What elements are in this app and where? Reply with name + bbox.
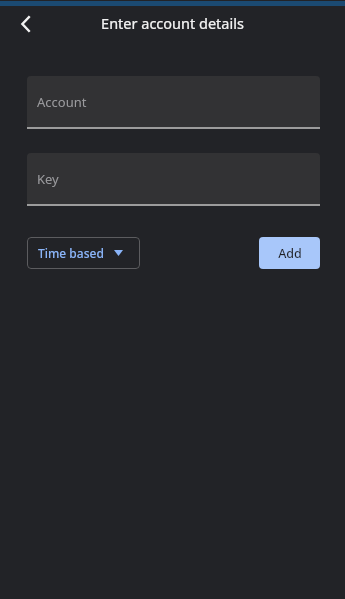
button[interactable]: Account [27, 76, 320, 129]
staticText: Time based [38, 245, 104, 261]
button[interactable]: Back [8, 6, 44, 42]
button[interactable]: Key [27, 153, 320, 206]
staticText: Enter account details [101, 13, 244, 33]
staticText: Add [278, 245, 302, 262]
staticText: Key [37, 170, 59, 188]
button[interactable]: Add [259, 237, 320, 269]
button[interactable]: Time based [27, 237, 140, 269]
staticText: Account [37, 93, 87, 111]
